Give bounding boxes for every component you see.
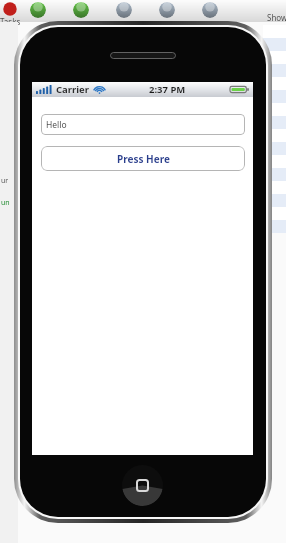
staticText: 2:37 PM [149, 83, 186, 96]
staticText: Carrier [56, 83, 90, 96]
button[interactable]: Run [30, 2, 46, 18]
button[interactable]: Step Over [116, 2, 132, 18]
button[interactable]: Home [122, 465, 163, 506]
button[interactable]: Pause [73, 2, 89, 18]
staticText: Tasks [0, 16, 21, 27]
button[interactable]: Step Out [202, 2, 218, 18]
button[interactable]: Step Into [159, 2, 175, 18]
staticText: Show [267, 12, 286, 23]
button[interactable]: Press Here [41, 146, 245, 171]
staticText: Press Here [117, 152, 170, 166]
staticText: un [1, 198, 10, 208]
staticText: Hello [46, 119, 67, 131]
button[interactable]: Hello [41, 114, 245, 135]
staticText: ur [1, 176, 9, 186]
